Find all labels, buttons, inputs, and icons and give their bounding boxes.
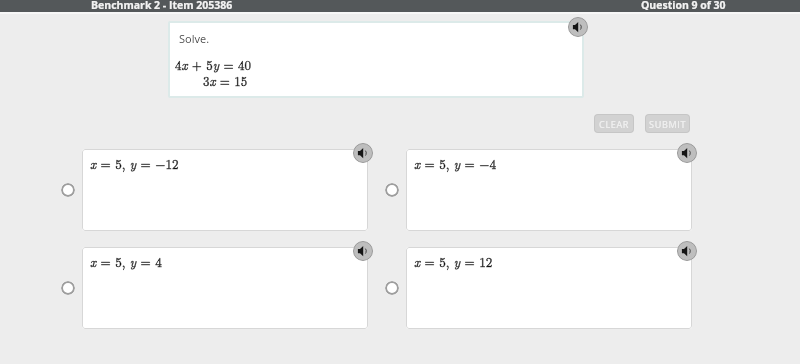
button[interactable]: x = 5, y = −12 (82, 149, 368, 231)
staticText: x = 5, y = 4 (90, 252, 162, 271)
button[interactable]: Play audio (677, 143, 697, 163)
staticText: x = 5, y = −4 (414, 154, 497, 173)
staticText: CLEAR (599, 118, 630, 130)
button[interactable]: Play audio (353, 143, 373, 163)
staticText: 3x = 15 (203, 71, 248, 89)
staticText: SUBMIT (649, 118, 687, 130)
button[interactable]: x = 5, y = −4 (406, 149, 692, 231)
button[interactable]: CLEAR (595, 115, 633, 132)
staticText: Question 9 of 30 (641, 0, 726, 10)
staticText: 4x + 5y = 40 (175, 55, 251, 73)
button[interactable]: Select option 4 (385, 281, 399, 295)
button[interactable]: Play audio (353, 241, 373, 261)
button[interactable]: Select option 3 (61, 281, 75, 295)
staticText: Benchmark 2 - Item 205386 (91, 0, 233, 10)
staticText: 3x = 15 (203, 71, 248, 89)
button[interactable]: x = 5, y = 12 (406, 247, 692, 329)
staticText: x = 5, y = 12 (414, 252, 493, 271)
staticText: x = 5, y = 4 (90, 252, 162, 271)
staticText: Solve. (179, 31, 210, 46)
staticText: x = 5, y = 12 (414, 252, 493, 271)
button[interactable]: x = 5, y = 4 (82, 247, 368, 329)
button[interactable]: SUBMIT (646, 115, 689, 132)
button[interactable]: Play audio (568, 17, 588, 37)
staticText: x = 5, y = −4 (414, 154, 497, 173)
button[interactable]: Play audio (677, 241, 697, 261)
staticText: 4x + 5y = 40 (175, 55, 251, 73)
button[interactable]: Select option 2 (385, 183, 399, 197)
button[interactable]: Select option 1 (61, 183, 75, 197)
staticText: x = 5, y = −12 (90, 154, 179, 173)
staticText: x = 5, y = −12 (90, 154, 179, 173)
